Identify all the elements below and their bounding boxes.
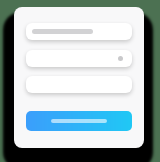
button[interactable] xyxy=(26,50,132,67)
button[interactable] xyxy=(26,23,132,40)
button[interactable] xyxy=(26,111,132,131)
